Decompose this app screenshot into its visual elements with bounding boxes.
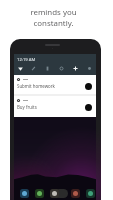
button[interactable]: Mark done — [85, 83, 92, 90]
button[interactable]: App — [20, 189, 29, 198]
button[interactable]: Submit homework — [14, 75, 96, 94]
button[interactable]: App — [86, 189, 95, 198]
button[interactable]: Mark done — [85, 104, 92, 111]
button[interactable]: Buy fruits — [14, 96, 96, 117]
button[interactable]: Search — [55, 189, 68, 198]
button[interactable]: Wi-Fi — [14, 63, 27, 73]
staticText: Buy fruits — [17, 104, 37, 110]
staticText: 12:19 AM — [17, 57, 36, 63]
staticText: Submit homework — [17, 83, 55, 89]
button[interactable]: Mobile data — [27, 63, 40, 73]
staticText: constantly. — [33, 18, 74, 29]
button[interactable]: App — [35, 189, 44, 198]
staticText: reminds you — [30, 7, 77, 18]
button[interactable]: Auto rotate — [54, 63, 68, 73]
button[interactable]: App — [71, 189, 80, 198]
button[interactable]: Brightness — [82, 63, 96, 73]
button[interactable]: Battery saver — [40, 63, 54, 73]
button[interactable]: Add tile — [68, 63, 82, 73]
button[interactable]: App — [50, 189, 59, 198]
